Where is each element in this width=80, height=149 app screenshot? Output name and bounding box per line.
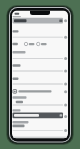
button[interactable] [12,123,66,133]
button[interactable] [12,76,66,87]
button[interactable] [12,30,66,40]
button[interactable] [12,50,66,61]
button[interactable] [12,17,64,25]
button[interactable] [24,41,36,48]
button[interactable] [12,95,66,107]
button[interactable] [12,88,66,95]
button[interactable] [12,112,64,119]
button[interactable] [36,41,48,48]
button[interactable] [12,63,66,74]
